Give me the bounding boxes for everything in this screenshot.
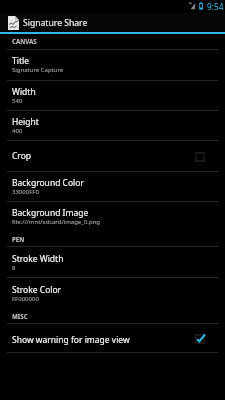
staticText: MISC	[12, 312, 28, 320]
staticText: Signature Share	[23, 17, 88, 29]
staticText: FF000000	[12, 295, 39, 303]
staticText: 9:54	[207, 1, 224, 12]
button[interactable]: Title	[0, 50, 225, 80]
button[interactable]: Width	[0, 81, 225, 110]
staticText: Background Color	[12, 177, 84, 189]
staticText: Signature Capture	[12, 66, 64, 74]
staticText: Stroke Width	[12, 253, 64, 265]
button[interactable]: Show warning for image view	[0, 324, 225, 352]
staticText: PEN	[12, 235, 25, 243]
staticText: 33000FF0	[12, 188, 39, 196]
staticText: Show warning for image view	[12, 334, 194, 346]
staticText: Stroke Color	[12, 284, 62, 296]
staticText: file:///mnt/sdcard/image_0.png	[12, 218, 101, 226]
staticText: Height	[12, 116, 39, 128]
staticText: 8	[12, 264, 16, 272]
staticText: Title	[12, 55, 29, 67]
button[interactable]: Height	[0, 111, 225, 140]
button[interactable]: Background Image	[0, 202, 225, 232]
button[interactable]: App icon	[0, 13, 225, 32]
staticText: CANVAS	[12, 37, 37, 45]
button[interactable]: Crop	[0, 141, 225, 171]
button[interactable]: Stroke Width	[0, 247, 225, 277]
staticText: Background Image	[12, 207, 89, 219]
staticText: 400	[12, 127, 23, 135]
staticText: 540	[12, 97, 23, 105]
staticText: Width	[12, 86, 36, 98]
button[interactable]: Stroke Color	[0, 278, 225, 309]
button[interactable]: Background Color	[0, 172, 225, 201]
other: App icon	[8, 16, 19, 30]
staticText: Crop	[12, 150, 194, 162]
